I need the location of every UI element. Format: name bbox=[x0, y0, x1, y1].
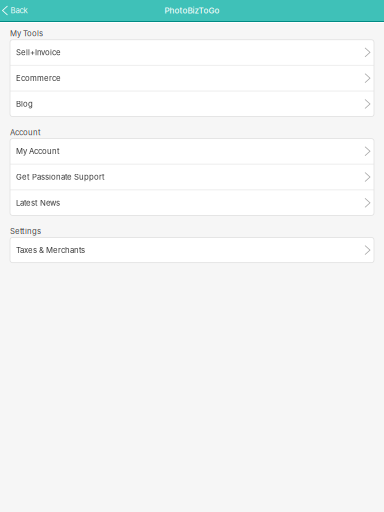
button[interactable]: My Account bbox=[10, 139, 374, 164]
button[interactable]: Get Passionate Support bbox=[10, 164, 374, 190]
staticText: Sell+Invoice bbox=[16, 48, 61, 57]
staticText: Ecommerce bbox=[16, 73, 61, 83]
staticText: PhotoBizToGo bbox=[164, 6, 219, 15]
button[interactable]: Back bbox=[0, 2, 31, 19]
button[interactable]: Sell+Invoice bbox=[10, 40, 374, 66]
staticText: Taxes & Merchants bbox=[16, 245, 85, 255]
button[interactable]: Ecommerce bbox=[10, 66, 374, 91]
staticText: Latest News bbox=[16, 198, 60, 207]
staticText: My Tools bbox=[10, 29, 43, 38]
staticText: My Account bbox=[16, 146, 60, 156]
staticText: Settings bbox=[10, 226, 41, 236]
staticText: Get Passionate Support bbox=[16, 172, 105, 182]
staticText: Back bbox=[10, 6, 27, 15]
staticText: Blog bbox=[16, 99, 33, 109]
staticText: Account bbox=[10, 128, 41, 137]
button[interactable]: Blog bbox=[10, 91, 374, 117]
button[interactable]: Taxes & Merchants bbox=[10, 237, 374, 263]
button[interactable]: Latest News bbox=[10, 190, 374, 215]
